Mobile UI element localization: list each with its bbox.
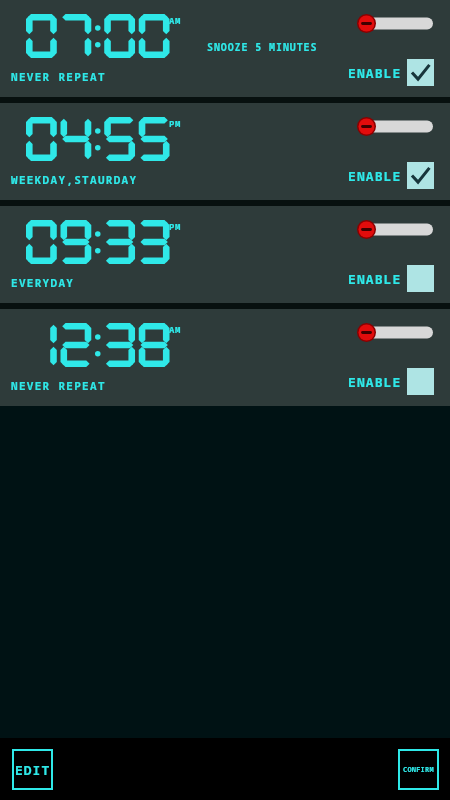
staticText: NEVER REPEAT [11,69,106,84]
staticText: ENABLE [348,373,402,391]
staticText: CONFIRM [403,765,434,775]
button[interactable]: Alarm volume toggle [357,14,433,33]
button[interactable]: ENABLE [346,366,436,397]
button[interactable]: AM [0,309,450,406]
staticText: ENABLE [348,64,402,82]
staticText: NEVER REPEAT [11,378,106,393]
staticText: AM [169,323,181,335]
button[interactable]: Alarm volume toggle [357,220,433,239]
staticText: ENABLE [348,270,402,288]
staticText: PM [169,220,181,232]
button[interactable]: Alarm volume toggle [357,117,433,136]
staticText: WEEKDAY,STAURDAY [11,172,138,187]
button[interactable]: EDIT [12,749,53,790]
button[interactable]: ENABLE [346,57,436,88]
button[interactable]: PM [0,206,450,303]
button[interactable]: Alarm volume toggle [357,323,433,342]
button[interactable]: ENABLE [346,160,436,191]
staticText: SNOOZE 5 MINUTES [207,40,318,54]
button[interactable]: PM [0,103,450,200]
staticText: EDIT [15,761,51,779]
button[interactable]: ENABLE [346,263,436,294]
staticText: AM [169,14,181,26]
staticText: ENABLE [348,167,402,185]
staticText: EVERYDAY [11,275,75,290]
staticText: PM [169,117,181,129]
button[interactable]: AM [0,0,450,97]
button[interactable]: CONFIRM [398,749,439,790]
